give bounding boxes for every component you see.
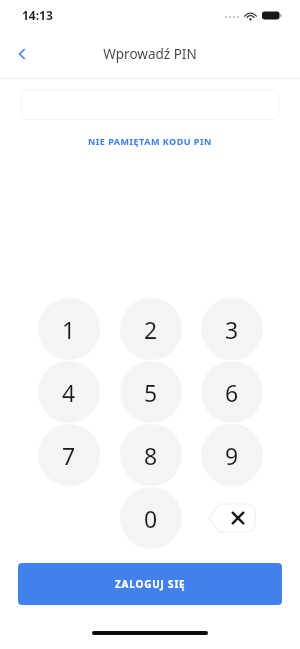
staticText: ZALOGUJ SIĘ — [115, 577, 186, 591]
staticText: 0 — [144, 503, 158, 534]
button[interactable] — [21, 90, 279, 120]
staticText: 9 — [225, 440, 239, 471]
staticText: 8 — [144, 440, 158, 471]
staticText: 5 — [144, 377, 158, 408]
staticText: 6 — [225, 377, 239, 408]
button[interactable]: Back — [8, 40, 36, 68]
button[interactable]: 1 — [38, 298, 100, 360]
button[interactable]: 4 — [38, 361, 100, 423]
button[interactable]: 5 — [120, 361, 182, 423]
button[interactable]: 3 — [201, 298, 263, 360]
staticText: NIE PAMIĘTAM KODU PIN — [88, 135, 212, 147]
button[interactable]: 9 — [201, 424, 263, 486]
staticText: 7 — [62, 440, 76, 471]
staticText: 4 — [62, 377, 76, 408]
button[interactable]: ZALOGUJ SIĘ — [18, 563, 282, 605]
staticText: 2 — [144, 314, 158, 345]
button[interactable]: 8 — [120, 424, 182, 486]
button[interactable]: Backspace — [209, 504, 255, 532]
staticText: 14:13 — [22, 7, 53, 23]
button[interactable]: 7 — [38, 424, 100, 486]
button[interactable]: NIE PAMIĘTAM KODU PIN — [82, 132, 218, 150]
staticText: 1 — [62, 314, 76, 345]
staticText: Wprowadź PIN — [103, 45, 197, 63]
staticText: 3 — [225, 314, 239, 345]
button[interactable]: 0 — [120, 487, 182, 549]
button[interactable]: 6 — [201, 361, 263, 423]
button[interactable]: 2 — [120, 298, 182, 360]
